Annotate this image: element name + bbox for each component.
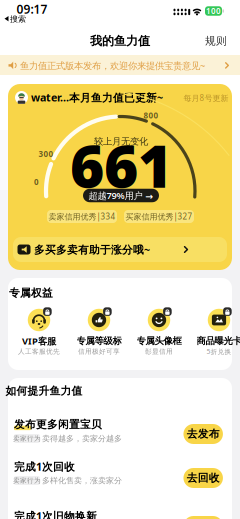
staticText: 搜索 [10, 14, 26, 24]
staticText: 鱼力值正式版本发布，欢迎你来提供宝贵意见~ [20, 59, 205, 72]
staticText: 多样化售卖，涨卖家分 [42, 476, 122, 485]
staticText: 661 [70, 126, 172, 204]
staticText: 完成1次回收 [14, 459, 75, 474]
button[interactable]: 去回收 [183, 468, 223, 488]
staticText: water...本月鱼力值已更新~ [31, 90, 163, 105]
button[interactable]: 专属头像框 [129, 298, 189, 360]
staticText: 多买多卖有助于涨分哦~ [34, 242, 150, 257]
button[interactable]: 超越79%用户 → [83, 189, 159, 202]
button[interactable]: Back [108, 247, 132, 271]
button[interactable]: VIP客服 [9, 298, 69, 360]
button[interactable]: 专属等级标 [69, 298, 129, 360]
staticText: 专属权益 [9, 286, 53, 299]
staticText: 卖家行为 [13, 434, 41, 443]
staticText: 09:17 [16, 1, 47, 17]
button[interactable]: 鱼力值正式版本发布，欢迎你来提供宝贵意见~ [0, 55, 240, 75]
staticText: 信用极好可享 [78, 347, 120, 356]
staticText: 去发布 [187, 427, 220, 440]
staticText: 100 [206, 6, 221, 16]
staticText: 专属等级标 [76, 335, 121, 347]
staticText: 800 [143, 110, 158, 121]
staticText: 5折兑换 [206, 347, 231, 356]
button[interactable]: 去兑换 [183, 516, 223, 519]
staticText: 如何提升鱼力值 [5, 384, 82, 397]
staticText: VIP客服 [22, 335, 56, 347]
button[interactable]: 商品曝光卡 [189, 298, 240, 360]
button[interactable]: 多买多卖有助于涨分哦~ [13, 237, 227, 262]
button[interactable]: 规则 [201, 31, 231, 51]
button[interactable]: 卖家信用优秀|334 [47, 210, 117, 223]
staticText: 去回收 [187, 471, 220, 484]
staticText: 买家信用优秀|327 [125, 211, 192, 222]
button[interactable]: 去发布 [183, 424, 223, 444]
staticText: 规则 [205, 34, 227, 47]
staticText: 每月8号更新 [183, 93, 228, 103]
staticText: 0 [34, 177, 39, 187]
staticText: 较上月无变化 [94, 136, 148, 147]
staticText: 发布更多闲置宝贝 [14, 418, 102, 431]
staticText: 专属头像框 [136, 335, 181, 347]
staticText: 彰显信用 [145, 347, 173, 356]
staticText: 人工客服优先 [18, 347, 60, 356]
staticText: 卖家信用优秀|334 [48, 211, 115, 222]
button[interactable]: 买家信用优秀|327 [124, 210, 194, 223]
staticText: 我的鱼力值 [90, 34, 150, 48]
staticText: 300 [38, 149, 53, 159]
staticText: 完成1次旧物换新 [14, 509, 97, 519]
staticText: 商品曝光卡 [196, 335, 240, 347]
staticText: 卖得越多，卖家分越多 [42, 434, 122, 443]
staticText: 卖家行为 [13, 476, 41, 485]
staticText: 超越79%用户 → [88, 189, 153, 202]
